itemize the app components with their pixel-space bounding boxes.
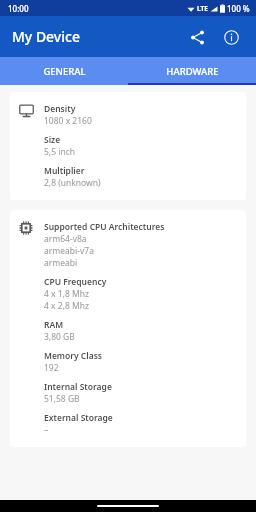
- button[interactable]: HARDWARE: [128, 57, 256, 85]
- button[interactable]: Supported CPU Architectures: [10, 210, 246, 447]
- staticText: armeabi-v7a: [44, 245, 94, 257]
- staticText: 2,8 (unknown): [44, 177, 101, 189]
- staticText: My Device: [12, 27, 80, 46]
- staticText: CPU Frequency: [44, 276, 107, 288]
- staticText: External Storage: [44, 412, 113, 424]
- staticText: LTE: [197, 4, 208, 13]
- staticText: GENERAL: [43, 65, 86, 78]
- staticText: Memory Class: [44, 350, 103, 362]
- button[interactable]: Info: [216, 22, 246, 52]
- staticText: 100 %: [227, 3, 250, 14]
- staticText: 51,58 GB: [44, 393, 80, 405]
- button[interactable]: Density: [10, 92, 246, 200]
- staticText: 4 x 2,8 Mhz: [44, 300, 89, 312]
- staticText: 10:00: [8, 3, 29, 14]
- staticText: –: [44, 424, 49, 436]
- staticText: 1080 x 2160: [44, 115, 92, 127]
- button[interactable]: Share: [182, 22, 212, 52]
- staticText: HARDWARE: [166, 65, 219, 78]
- button[interactable]: GENERAL: [0, 57, 128, 85]
- staticText: Internal Storage: [44, 381, 112, 393]
- staticText: 192: [44, 362, 59, 374]
- staticText: Supported CPU Architectures: [44, 221, 165, 233]
- staticText: arm64-v8a: [44, 233, 87, 245]
- staticText: 4 x 1,8 Mhz: [44, 288, 89, 300]
- staticText: RAM: [44, 319, 64, 331]
- staticText: 3,80 GB: [44, 331, 75, 343]
- staticText: Size: [44, 134, 61, 146]
- staticText: armeabi: [44, 257, 78, 269]
- staticText: Multiplier: [44, 165, 85, 177]
- staticText: 5,5 inch: [44, 146, 75, 158]
- staticText: Density: [44, 103, 76, 115]
